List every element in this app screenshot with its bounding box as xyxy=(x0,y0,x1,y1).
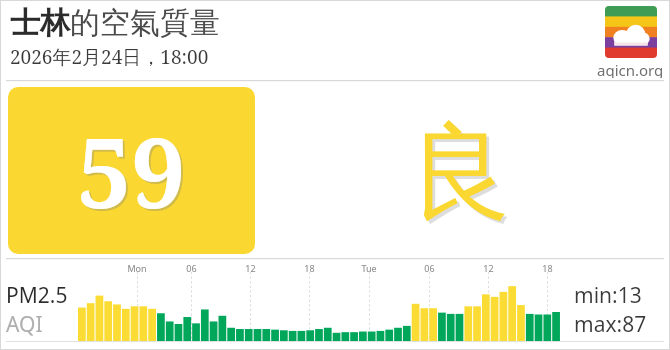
staticText: 12 xyxy=(483,262,494,274)
staticText: 良 xyxy=(408,108,512,238)
staticText: AQI xyxy=(6,310,43,339)
staticText: 的空氣質量 xyxy=(70,4,220,42)
staticText: PM2.5 xyxy=(6,281,68,310)
button[interactable]: aqicn.org logo xyxy=(605,6,657,58)
staticText: 59 xyxy=(77,105,186,236)
staticText: 2026年2月24日，18:00 xyxy=(10,44,209,70)
staticText: max:87 xyxy=(574,310,647,339)
button[interactable]: 59 xyxy=(8,87,255,254)
staticText: 12 xyxy=(245,262,256,274)
staticText: 18 xyxy=(542,262,553,274)
staticText: min:13 xyxy=(574,281,642,310)
staticText: aqicn.org xyxy=(597,60,664,78)
staticText: 18 xyxy=(304,262,315,274)
staticText: 59 xyxy=(79,107,188,238)
staticText: 06 xyxy=(186,262,197,274)
staticText: Mon xyxy=(127,262,147,274)
staticText: Tue xyxy=(361,262,377,274)
staticText: 士林 xyxy=(10,4,70,42)
staticText: 良 xyxy=(411,111,515,241)
staticText: 06 xyxy=(424,262,435,274)
